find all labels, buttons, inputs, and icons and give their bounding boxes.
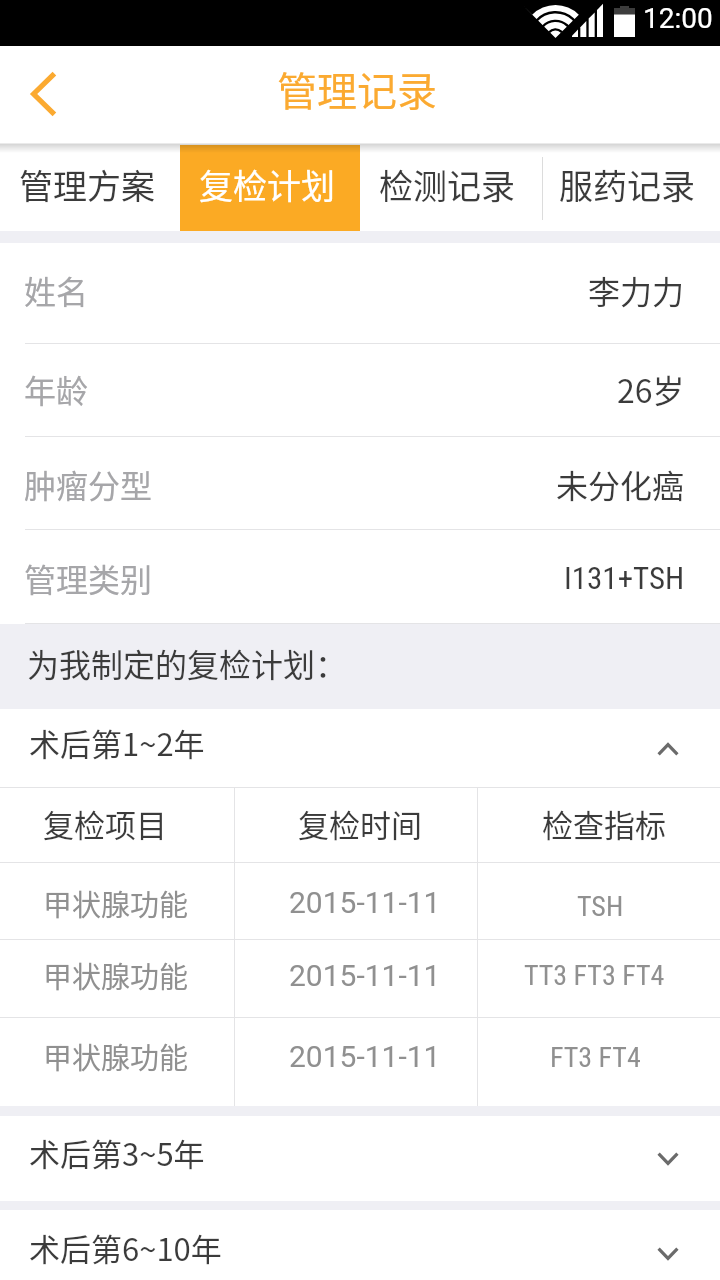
staticText: TSH — [577, 890, 624, 923]
staticText: 年龄 — [24, 366, 89, 412]
staticText: 未分化癌 — [556, 461, 685, 507]
staticText: 2015-11-11 — [289, 1039, 441, 1074]
staticText: 管理类别 — [24, 555, 153, 601]
staticText: 管理方案 — [19, 160, 155, 209]
staticText: 甲状腺功能 — [43, 882, 189, 924]
staticText: 为我制定的复检计划： — [27, 640, 348, 686]
staticText: 复检计划 — [199, 160, 335, 209]
staticText: 甲状腺功能 — [43, 1035, 189, 1077]
button[interactable]: 复检计划 — [180, 145, 360, 231]
staticText: 术后第6~10年 — [29, 1225, 222, 1270]
button[interactable]: 检测记录 — [360, 145, 540, 231]
button[interactable]: 姓名 — [0, 243, 720, 344]
other: Expand — [657, 1152, 679, 1165]
button[interactable]: 术后第1~2年 — [0, 709, 720, 787]
staticText: 术后第1~2年 — [29, 720, 205, 765]
button[interactable]: 服药记录 — [540, 145, 720, 231]
staticText: 26岁 — [617, 366, 685, 412]
other: Expand — [657, 1247, 679, 1260]
button[interactable]: 术后第6~10年 — [0, 1210, 720, 1280]
staticText: 2015-11-11 — [289, 885, 441, 920]
staticText: 12:00 — [643, 2, 713, 35]
staticText: 检测记录 — [379, 160, 515, 209]
staticText: 管理记录 — [277, 60, 437, 118]
staticText: 复检时间 — [298, 801, 422, 846]
staticText: 服药记录 — [559, 160, 695, 209]
staticText: 术后第3~5年 — [29, 1130, 205, 1175]
staticText: 复检项目 — [43, 801, 167, 846]
staticText: FT3 FT4 — [550, 1041, 641, 1074]
staticText: TT3 FT3 FT4 — [524, 959, 665, 992]
staticText: 检查指标 — [542, 801, 666, 846]
button[interactable]: 年龄 — [0, 344, 720, 437]
button[interactable]: 管理类别 — [0, 530, 720, 624]
staticText: 2015-11-11 — [289, 958, 441, 993]
staticText: 姓名 — [24, 267, 89, 313]
staticText: I131+TSH — [564, 560, 685, 596]
button[interactable]: 术后第3~5年 — [0, 1116, 720, 1201]
staticText: 李力力 — [588, 267, 685, 313]
staticText: 肿瘤分型 — [24, 461, 153, 507]
other: Collapse — [657, 743, 679, 756]
staticText: 甲状腺功能 — [43, 954, 189, 996]
button[interactable]: 管理方案 — [0, 145, 180, 231]
button[interactable]: 肿瘤分型 — [0, 437, 720, 530]
button[interactable]: Back — [0, 46, 88, 145]
